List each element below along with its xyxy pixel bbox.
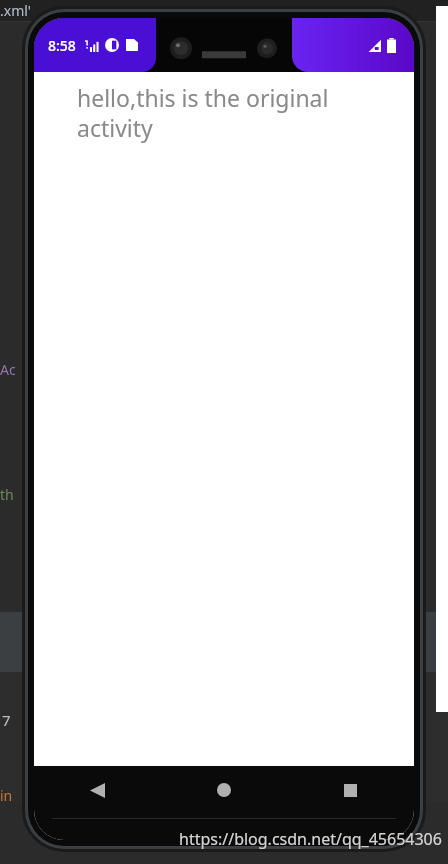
button[interactable]: Recent apps bbox=[287, 766, 414, 814]
button[interactable]: Back bbox=[34, 766, 160, 814]
staticText: .xml' bbox=[0, 1, 32, 20]
staticText: 7 bbox=[2, 710, 11, 730]
staticText: https://blog.csdn.net/qq_45654306 bbox=[179, 828, 442, 850]
staticText: hello,this is the original activity bbox=[77, 82, 367, 144]
staticText: 8:58 bbox=[48, 36, 76, 55]
staticText: Ac bbox=[0, 360, 16, 379]
button[interactable]: Home bbox=[160, 766, 287, 814]
staticText: th bbox=[0, 485, 14, 504]
staticText: in bbox=[0, 786, 13, 805]
